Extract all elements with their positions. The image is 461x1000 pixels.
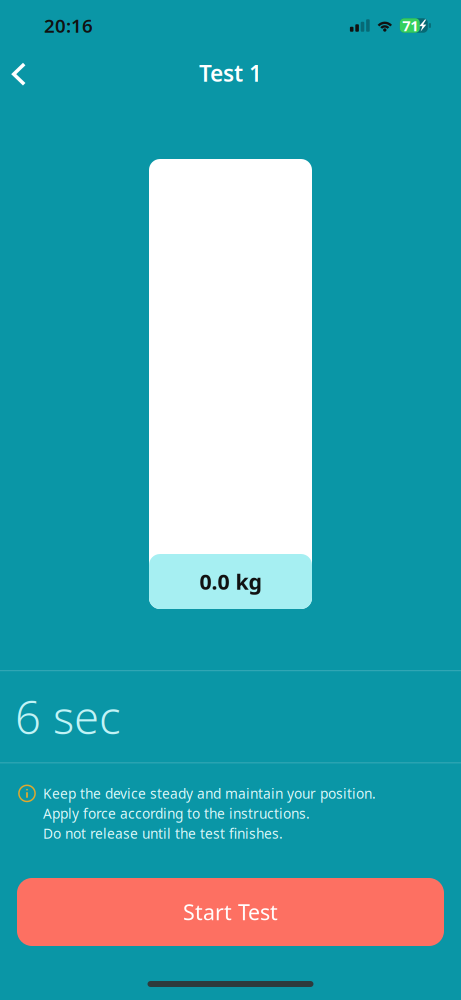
button[interactable]: Back: [0, 51, 40, 95]
staticText: 6 sec: [15, 687, 121, 747]
staticText: Test 1: [199, 58, 262, 88]
staticText: 0.0 kg: [199, 567, 261, 596]
staticText: 71: [402, 16, 418, 35]
staticText: Do not release until the test finishes.: [43, 824, 283, 843]
staticText: Start Test: [183, 898, 278, 926]
staticText: 20:16: [44, 13, 93, 38]
staticText: Keep the device steady and maintain your…: [43, 784, 376, 803]
staticText: Apply force according to the instruction…: [43, 804, 310, 823]
button[interactable]: Start Test: [17, 878, 444, 946]
